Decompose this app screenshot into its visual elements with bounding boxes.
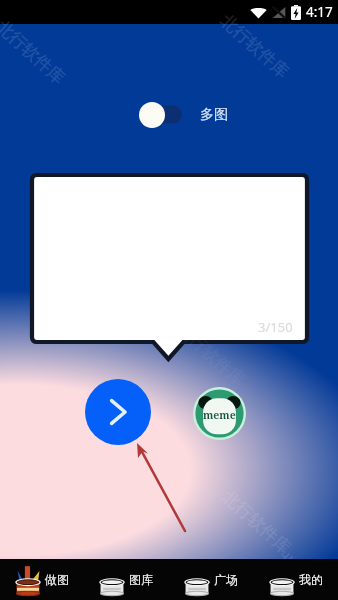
staticText: 北行软件库 [218, 486, 295, 558]
staticText: 广场 [214, 572, 238, 587]
staticText: 做图 [45, 572, 69, 587]
button[interactable]: Next [85, 379, 151, 445]
staticText: 北行软件库 [72, 556, 149, 600]
button[interactable]: 做图 [0, 559, 84, 600]
staticText: 3/150 [258, 318, 293, 336]
button[interactable]: Meme [193, 387, 246, 440]
staticText: 我的 [299, 572, 323, 587]
staticText: 北行软件库 [272, 548, 338, 600]
staticText: meme [203, 408, 236, 422]
button[interactable]: 我的 [253, 559, 338, 600]
staticText: 4:17 [306, 3, 333, 21]
button[interactable]: 广场 [168, 559, 253, 600]
button[interactable]: 图库 [84, 559, 168, 600]
staticText: 北行软件库 [0, 16, 69, 88]
staticText: 多图 [200, 106, 228, 124]
staticText: 图库 [129, 572, 153, 587]
staticText: 北行软件库 [216, 10, 293, 82]
staticText: 北行软件库 [172, 318, 249, 390]
button[interactable]: 多图 [139, 101, 228, 128]
